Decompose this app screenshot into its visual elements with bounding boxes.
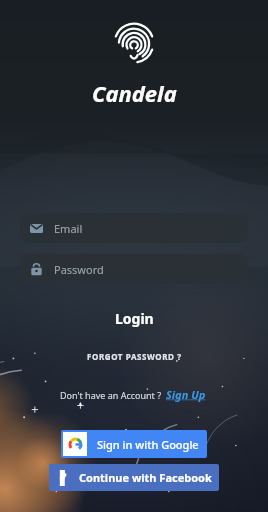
staticText: Sign in with Google xyxy=(97,437,199,452)
staticText: Login xyxy=(115,309,154,328)
button[interactable]: Password xyxy=(20,254,248,284)
button[interactable]: Continue with Facebook xyxy=(49,464,219,491)
staticText: Password xyxy=(54,262,104,277)
staticText: Email xyxy=(54,221,83,236)
staticText: Sign Up xyxy=(166,387,206,402)
staticText: Continue with Facebook xyxy=(79,470,212,485)
button[interactable]: FORGOT PASSWORD ? xyxy=(77,347,192,366)
staticText: FORGOT PASSWORD ? xyxy=(87,351,182,362)
other: Candela logo xyxy=(113,22,155,64)
button[interactable]: Sign Up xyxy=(164,386,208,403)
button[interactable]: Login xyxy=(97,304,172,333)
button[interactable]: Email xyxy=(20,213,248,243)
staticText: Don't have an Account ? xyxy=(60,389,164,401)
staticText: Candela xyxy=(92,78,177,108)
button[interactable]: Sign in with Google xyxy=(61,430,207,458)
